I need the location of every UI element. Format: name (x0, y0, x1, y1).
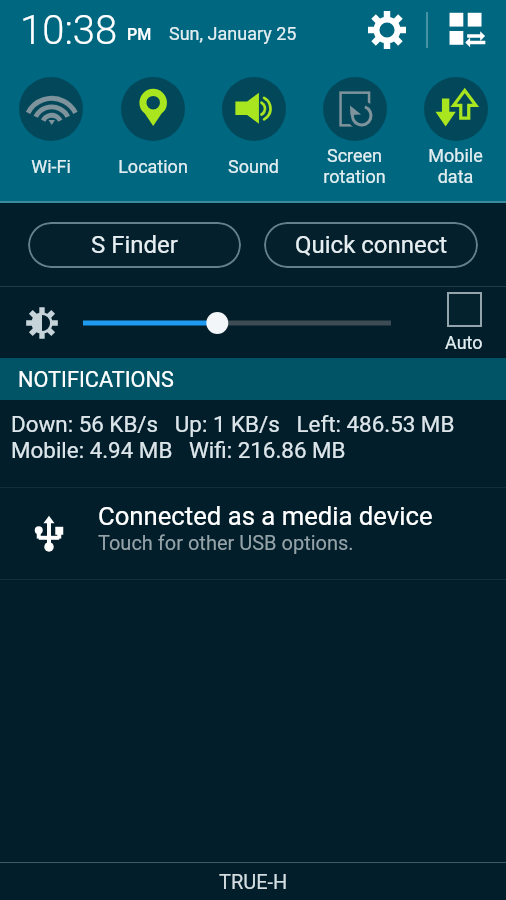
button[interactable]: Settings (362, 2, 412, 58)
staticText: Touch for other USB options. (98, 531, 354, 554)
staticText: Wi-Fi (31, 156, 71, 177)
staticText: NOTIFICATIONS (18, 367, 174, 392)
staticText: Location (118, 156, 188, 177)
staticText: Auto (445, 332, 483, 353)
staticText: Connected as a media device (98, 501, 433, 531)
staticText: Sound (228, 156, 279, 177)
button[interactable]: Location (102, 60, 203, 187)
button[interactable]: Connected as a media device (0, 488, 506, 579)
button[interactable]: Brightness (0, 287, 83, 358)
staticText: TRUE-H (219, 870, 288, 893)
staticText: 10:38 (20, 7, 118, 54)
button[interactable]: Mobile data (405, 60, 506, 187)
button[interactable]: Wi-Fi (0, 60, 102, 187)
button[interactable]: Sound (203, 60, 304, 187)
button[interactable]: Auto (391, 287, 506, 358)
staticText: Mobile data (428, 145, 483, 187)
staticText: Quick connect (295, 231, 448, 259)
staticText: S Finder (91, 231, 178, 259)
staticText: PM (127, 25, 152, 44)
staticText: Mobile: 4.94 MB Wifi: 216.86 MB (11, 437, 346, 463)
staticText: Sun, January 25 (169, 23, 297, 44)
button[interactable]: Quick connect (264, 222, 478, 268)
staticText: Down: 56 KB/s Up: 1 KB/s Left: 486.53 MB (11, 411, 455, 437)
button[interactable]: Screen rotation (304, 60, 405, 187)
button[interactable]: S Finder (28, 222, 241, 268)
button[interactable]: Edit quick settings (442, 2, 492, 58)
staticText: Screen rotation (323, 145, 386, 187)
